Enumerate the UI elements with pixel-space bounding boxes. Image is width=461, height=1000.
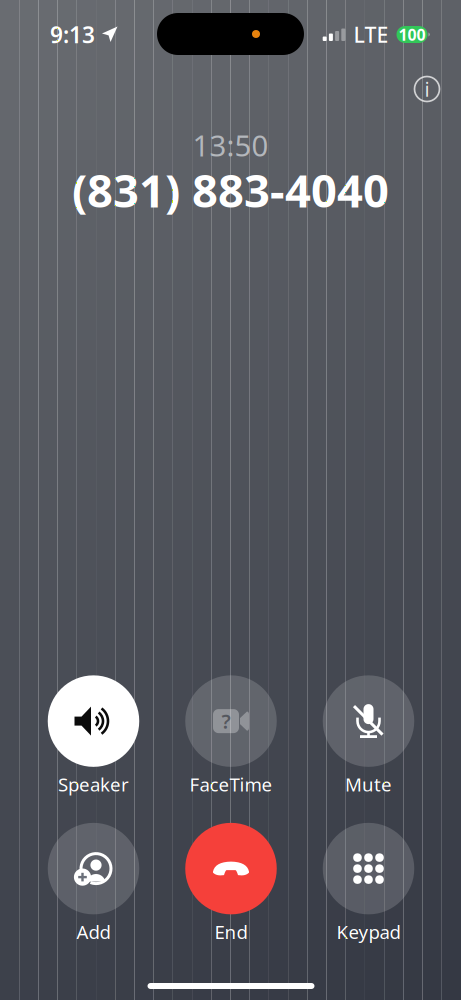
button[interactable]: Add (29, 823, 157, 944)
staticText: i (424, 76, 429, 102)
button[interactable]: Keypad (304, 823, 432, 944)
staticText: Mute (345, 772, 392, 797)
button[interactable]: ? (167, 675, 295, 797)
button[interactable]: Mute (304, 675, 432, 797)
staticText: 13:50 (192, 125, 268, 164)
button[interactable]: Speaker (29, 675, 157, 797)
staticText: Speaker (58, 772, 129, 797)
staticText: ? (221, 708, 230, 734)
staticText: FaceTime (189, 772, 272, 797)
staticText: (831) 883-4040 (72, 160, 389, 220)
button[interactable]: Call details (405, 67, 449, 111)
staticText: LTE (353, 20, 388, 49)
staticText: Add (76, 919, 110, 944)
button[interactable]: End (167, 823, 295, 944)
staticText: 100 (398, 24, 425, 45)
staticText: 9:13 (50, 19, 95, 49)
staticText: End (214, 919, 247, 944)
staticText: Keypad (336, 919, 400, 944)
